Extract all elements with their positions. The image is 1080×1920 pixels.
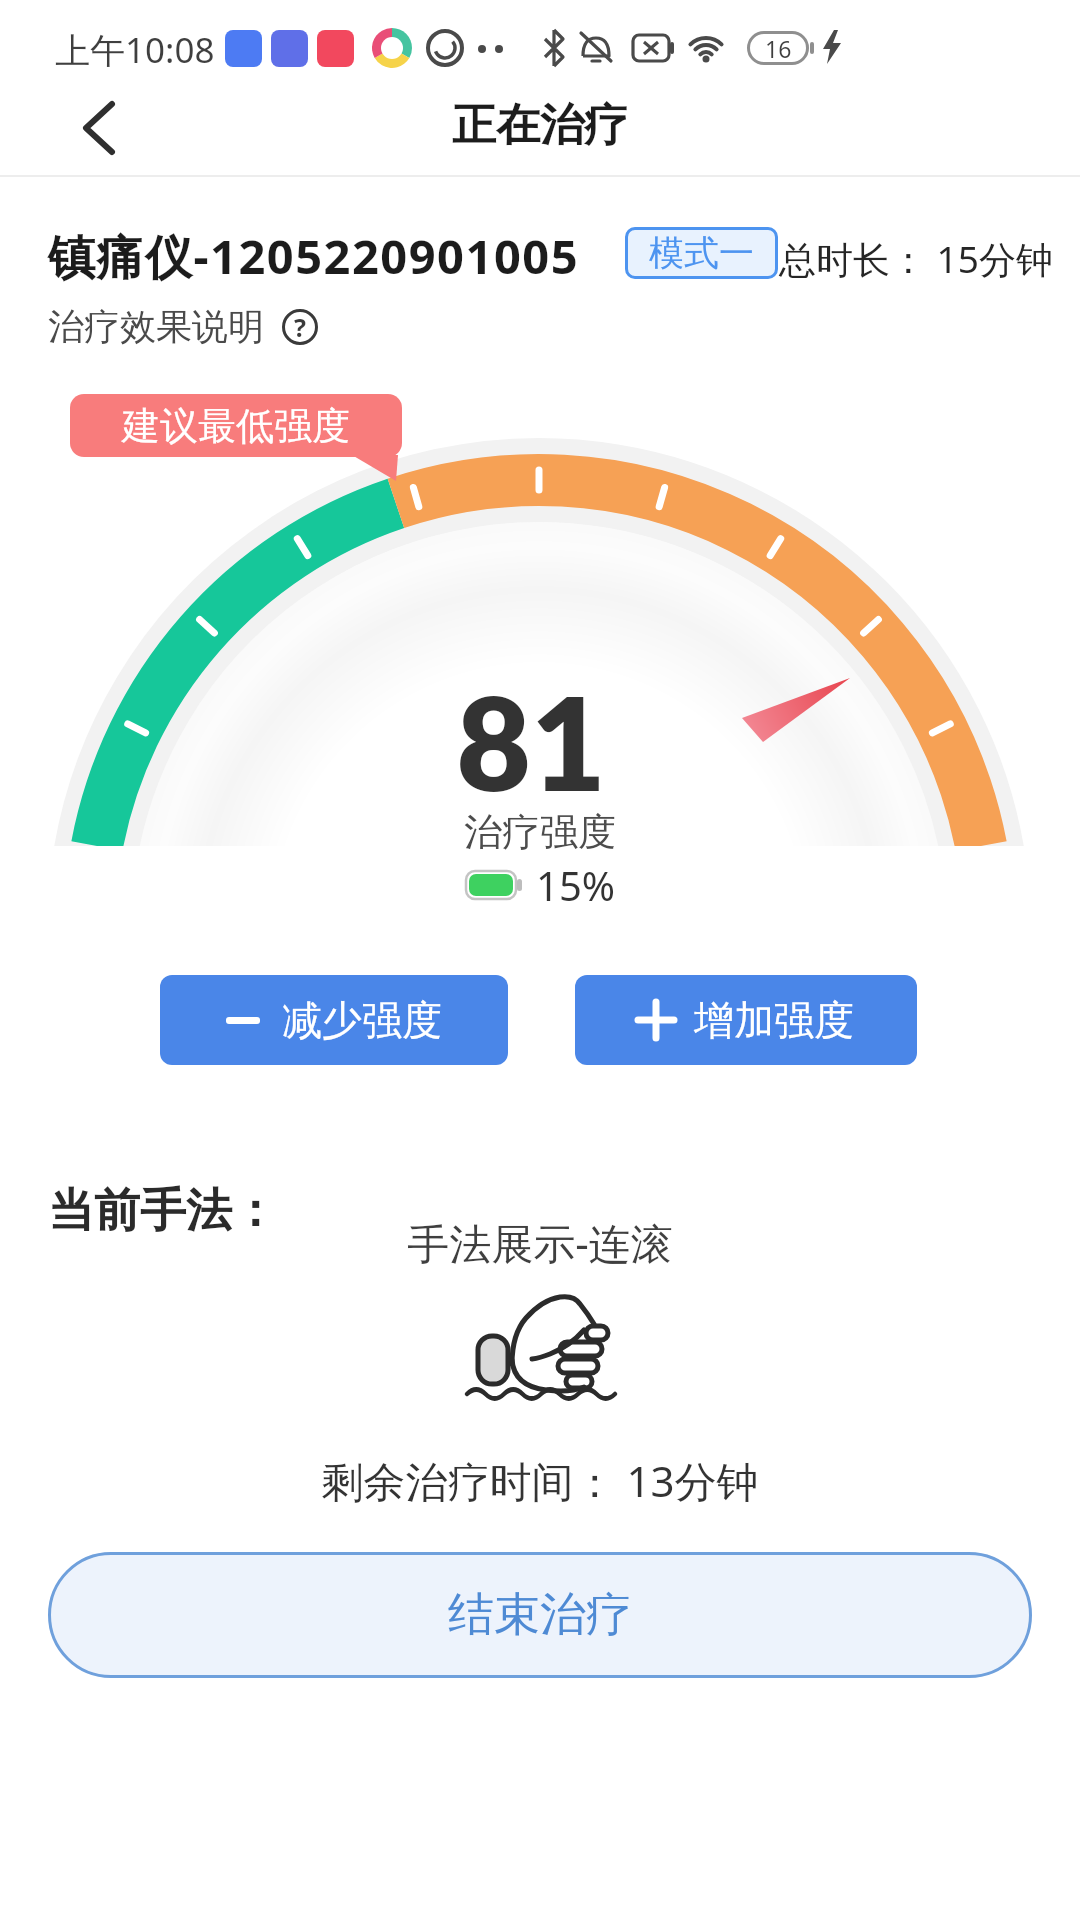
staticText: 总时长： 15分钟 [779, 233, 1053, 284]
staticText: 15% [536, 858, 615, 912]
staticText: 剩余治疗时间： 13分钟 [0, 1452, 1080, 1509]
button[interactable]: 治疗效果说明 [48, 304, 318, 349]
staticText: 模式一 [649, 231, 754, 275]
staticText: ? [294, 310, 306, 344]
staticText: 上午10:08 [55, 26, 215, 74]
staticText: 结束治疗 [448, 1586, 632, 1644]
staticText: 当前手法： [48, 1182, 278, 1240]
staticText: 增加强度 [694, 995, 854, 1045]
staticText: 治疗效果说明 [48, 304, 264, 349]
button[interactable]: 模式一 [625, 227, 778, 279]
button[interactable]: 减少强度 [160, 975, 508, 1065]
staticText: 16 [765, 33, 792, 64]
staticText: 减少强度 [282, 995, 442, 1045]
staticText: 建议最低强度 [122, 402, 350, 450]
staticText: 治疗强度 [0, 808, 1080, 856]
staticText: 81 [0, 664, 1071, 819]
staticText: 正在治疗 [0, 98, 1080, 153]
staticText: 手法展示-连滚 [0, 1214, 1080, 1271]
button[interactable] [72, 96, 136, 160]
button[interactable]: 结束治疗 [48, 1552, 1032, 1678]
button[interactable]: 增加强度 [575, 975, 917, 1065]
staticText: 镇痛仪-1205220901005 [48, 224, 580, 288]
